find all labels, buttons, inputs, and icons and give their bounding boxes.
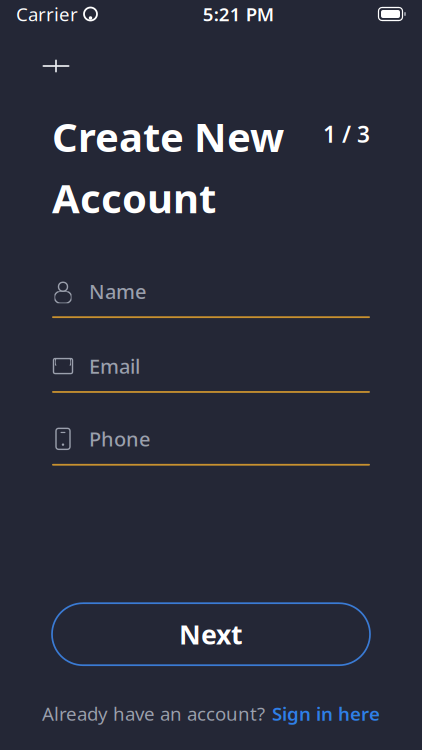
staticText: 5:21 PM	[203, 2, 274, 26]
staticText: 1 / 3	[323, 119, 370, 149]
button[interactable]: Back	[28, 42, 84, 90]
staticText: Next	[179, 616, 243, 652]
staticText: Name	[89, 278, 146, 305]
staticText: Phone	[89, 426, 150, 452]
staticText: Create New	[52, 110, 284, 163]
button[interactable]: Next	[52, 603, 370, 665]
staticText: Email	[89, 353, 140, 379]
staticText: Account	[52, 171, 216, 224]
staticText: Sign in here	[272, 701, 380, 726]
button[interactable]: Sign in here	[272, 701, 380, 726]
staticText: Already have an account?	[42, 701, 265, 726]
staticText: Carrier	[16, 2, 78, 26]
